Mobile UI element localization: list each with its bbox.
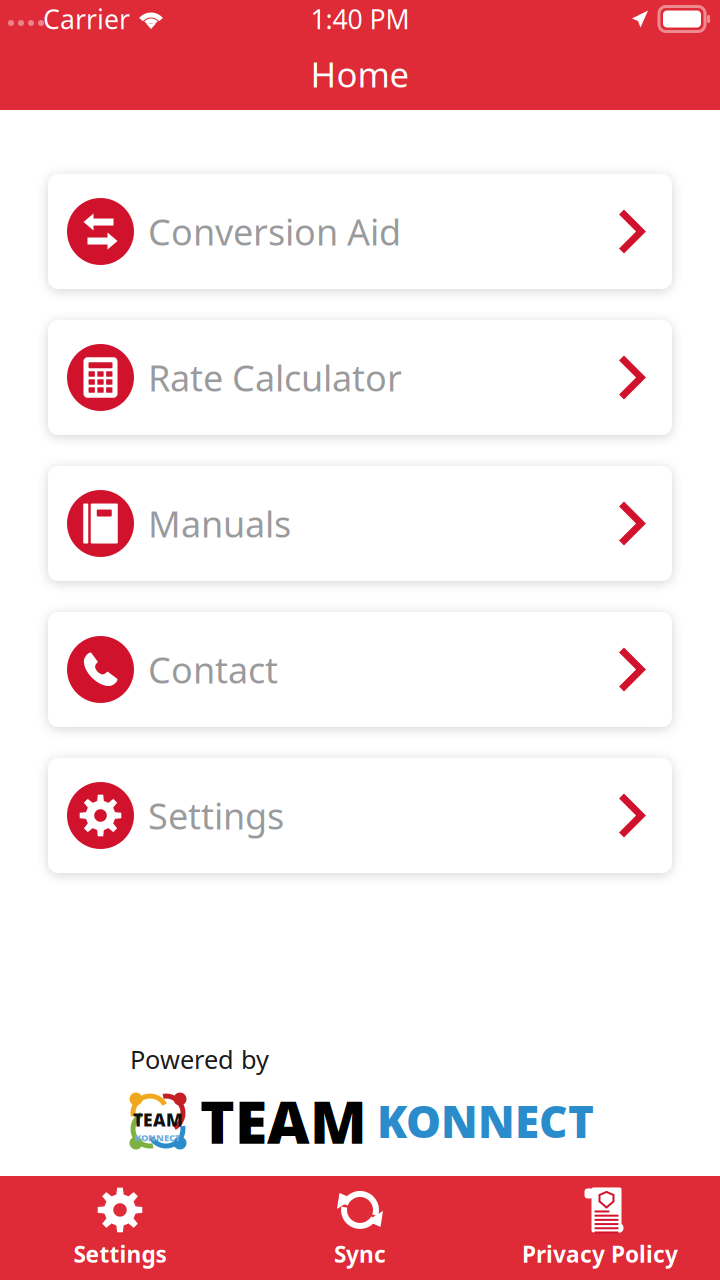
staticText: Rate Calculator	[148, 354, 402, 401]
button[interactable]: Privacy Policy	[480, 1176, 720, 1280]
staticText: Conversion Aid	[148, 208, 401, 255]
button[interactable]: Settings	[0, 1176, 240, 1280]
staticText: 1:40 PM	[310, 1, 409, 37]
button[interactable]: Rate Calculator	[48, 320, 672, 435]
button[interactable]: Contact	[48, 612, 672, 727]
staticText: Contact	[148, 646, 278, 693]
staticText: Settings	[148, 792, 284, 839]
staticText: Carrier	[43, 1, 130, 37]
staticText: KONNECT	[135, 1131, 181, 1144]
staticText: Home	[310, 51, 409, 97]
staticText: KONNECT	[377, 1092, 594, 1150]
button[interactable]: Manuals	[48, 466, 672, 581]
staticText: Powered by	[130, 1042, 269, 1076]
button[interactable]: Sync	[240, 1176, 480, 1280]
staticText: TEAM	[200, 1082, 367, 1160]
staticText: Settings	[73, 1239, 166, 1269]
button[interactable]: Settings	[48, 758, 672, 873]
staticText: Privacy Policy	[522, 1239, 678, 1269]
staticText: Sync	[334, 1239, 386, 1269]
staticText: TEAM	[133, 1108, 183, 1131]
button[interactable]: Conversion Aid	[48, 174, 672, 289]
staticText: Manuals	[148, 500, 291, 547]
